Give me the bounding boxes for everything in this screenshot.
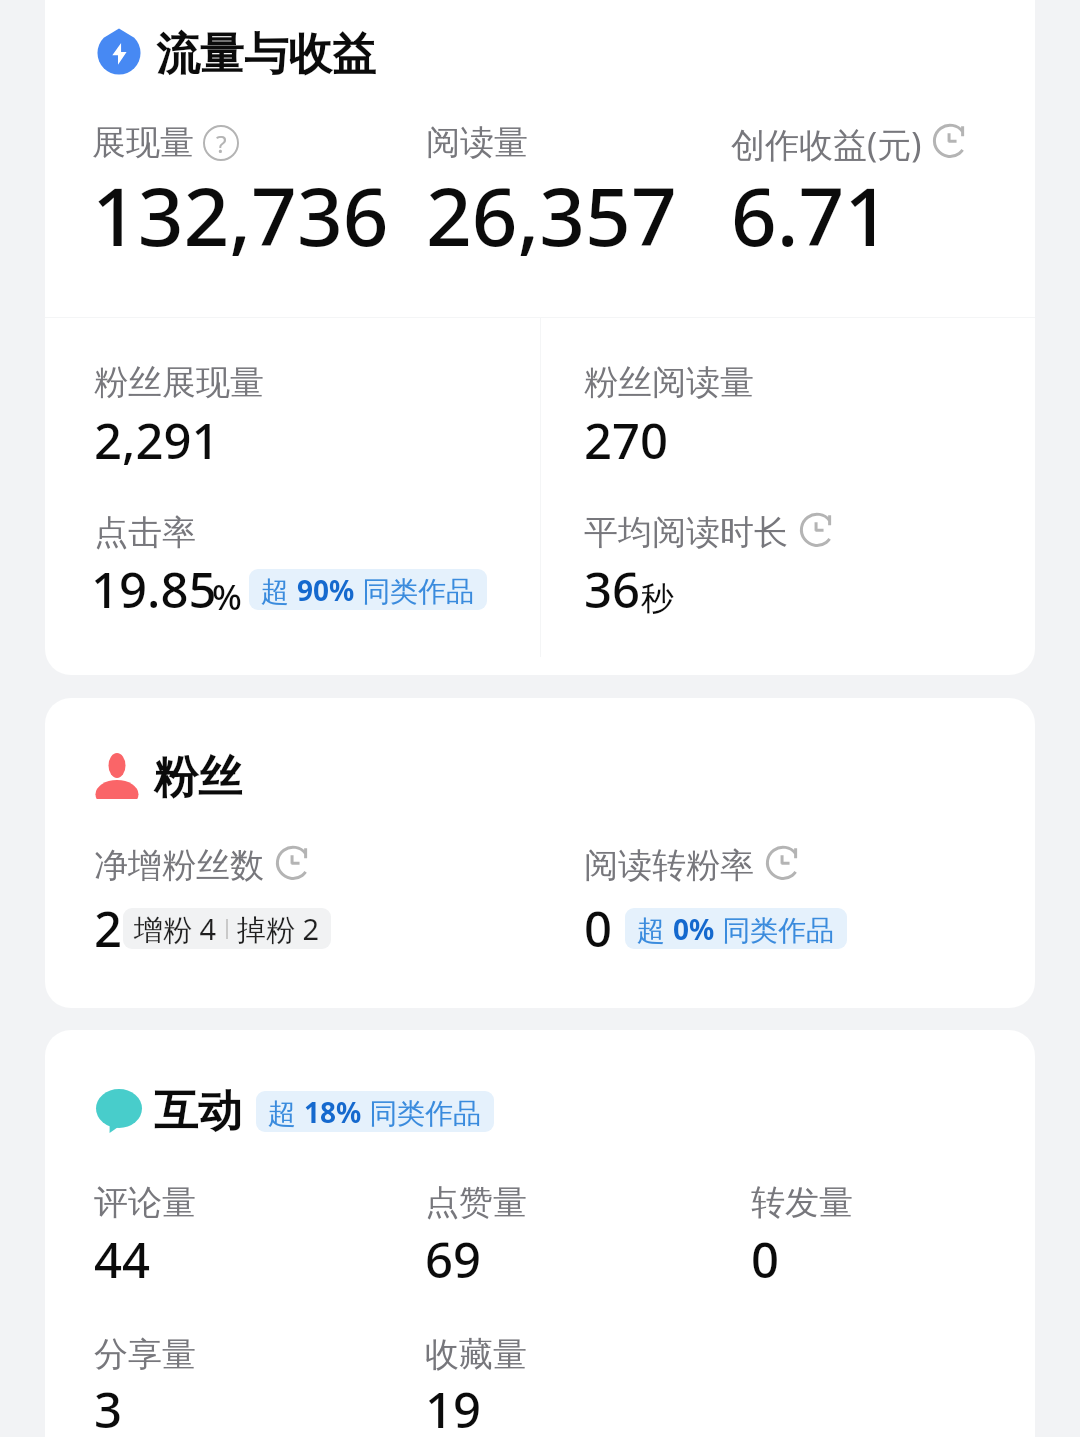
staticText: 36 <box>584 556 641 623</box>
staticText: 增粉 4 <box>134 909 217 949</box>
button[interactable]: 流量与收益 <box>96 27 376 82</box>
staticText: 流量与收益 <box>156 27 376 82</box>
staticText: 超 <box>261 571 297 609</box>
staticText: 超 <box>637 910 673 948</box>
staticText: 分享量 <box>94 1333 196 1376</box>
staticText: 创作收益(元) <box>731 121 922 167</box>
staticText: 26,357 <box>426 160 677 269</box>
button[interactable]: 创作收益历史数据 <box>731 121 970 167</box>
staticText: 19 <box>425 1376 482 1437</box>
staticText: 掉粉 2 <box>237 909 320 949</box>
staticText: 阅读转粉率 <box>584 844 754 887</box>
staticText: 2,291 <box>94 407 220 474</box>
staticText: 同类作品 <box>362 1093 482 1131</box>
staticText: 点击率 <box>94 511 196 554</box>
staticText: 粉丝 <box>154 750 242 805</box>
staticText: 2 <box>94 895 123 962</box>
staticText: 同类作品 <box>715 910 835 948</box>
staticText: 阅读量 <box>426 121 528 164</box>
staticText: 收藏量 <box>425 1333 527 1376</box>
staticText: 粉丝阅读量 <box>584 361 754 404</box>
staticText: 69 <box>425 1226 482 1293</box>
staticText: 评论量 <box>94 1181 196 1224</box>
button[interactable]: 平均阅读时长历史数据 <box>584 511 837 554</box>
staticText: 3 <box>94 1376 123 1437</box>
staticText: 互动 <box>154 1084 242 1139</box>
button[interactable]: 粉丝 <box>94 750 242 805</box>
staticText: 0 <box>751 1226 780 1293</box>
button[interactable]: 互动 <box>96 1084 494 1139</box>
staticText: 平均阅读时长 <box>584 511 788 554</box>
staticText: 同类作品 <box>355 571 475 609</box>
staticText: 0 <box>584 895 613 962</box>
staticText: 秒 <box>641 578 674 620</box>
staticText: 44 <box>94 1226 151 1293</box>
staticText: ? <box>216 127 227 160</box>
staticText: 18% <box>304 1093 362 1131</box>
other: 互动 <box>96 1089 142 1135</box>
staticText: 0% <box>673 910 715 948</box>
staticText: 6.71 <box>731 160 891 269</box>
staticText: 19.85 <box>91 556 217 623</box>
staticText: 粉丝展现量 <box>94 361 264 404</box>
button[interactable]: 阅读转粉率历史数据 <box>584 844 803 887</box>
staticText: 90% <box>297 571 355 609</box>
button[interactable]: 净增粉丝数历史数据 <box>94 844 313 887</box>
staticText: 点赞量 <box>425 1181 527 1224</box>
staticText: 转发量 <box>751 1181 853 1224</box>
button[interactable]: 展现量说明 <box>92 121 239 164</box>
staticText: 超 <box>268 1093 304 1131</box>
other: 流量与收益 <box>96 28 142 74</box>
staticText: 270 <box>584 407 669 474</box>
staticText: 净增粉丝数 <box>94 844 264 887</box>
staticText: % <box>212 573 242 621</box>
staticText: 132,736 <box>92 160 389 269</box>
other: 粉丝 <box>94 753 140 799</box>
staticText: 展现量 <box>92 121 194 164</box>
